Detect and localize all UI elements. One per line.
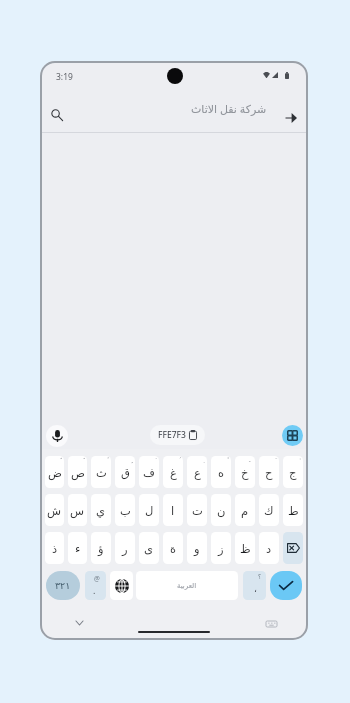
button[interactable]: ث: [91, 456, 111, 488]
button[interactable]: ظ: [235, 532, 255, 564]
staticText: ه: [218, 466, 225, 479]
staticText: ث: [96, 466, 107, 479]
staticText: ت: [192, 504, 203, 517]
staticText: ج: [289, 466, 297, 479]
button[interactable]: ا: [163, 494, 183, 526]
button[interactable]: ك: [259, 494, 279, 526]
button[interactable]: Search: [43, 101, 71, 129]
staticText: ؟: [258, 573, 262, 580]
staticText: د: [266, 542, 272, 555]
button[interactable]: Voice input: [46, 425, 68, 447]
staticText: ف: [143, 466, 155, 479]
staticText: ة: [170, 542, 177, 555]
button[interactable]: ض: [45, 456, 64, 488]
staticText: ط: [288, 504, 299, 517]
staticText: ض: [48, 466, 62, 479]
staticText: ك: [264, 504, 274, 517]
staticText: العربية: [177, 582, 197, 590]
staticText: ا: [171, 504, 175, 517]
staticText: خ: [241, 466, 249, 479]
button[interactable]: د: [259, 532, 279, 564]
button[interactable]: ق: [115, 456, 135, 488]
button[interactable]: Backspace: [283, 532, 303, 564]
button[interactable]: العربية: [136, 571, 238, 600]
button[interactable]: ة: [163, 532, 183, 564]
button[interactable]: ٣٢١: [46, 571, 80, 600]
button[interactable]: م: [235, 494, 255, 526]
button[interactable]: ح: [259, 456, 279, 488]
button[interactable]: ذ: [45, 532, 64, 564]
button[interactable]: Keyboard options: [282, 425, 303, 446]
staticText: م: [241, 504, 249, 517]
button[interactable]: Change keyboard language: [110, 571, 133, 600]
button[interactable]: ط: [283, 494, 303, 526]
staticText: ح: [265, 466, 273, 479]
staticText: ل: [145, 504, 154, 517]
staticText: ٣٢١: [55, 580, 71, 591]
staticText: ر: [122, 542, 128, 555]
staticText: ش: [47, 504, 62, 517]
staticText: FFE7F3: [158, 429, 186, 441]
staticText: 3:19: [56, 71, 73, 83]
button[interactable]: ء: [68, 532, 87, 564]
button[interactable]: ز: [211, 532, 231, 564]
staticText: و: [194, 542, 200, 555]
button[interactable]: ؟: [243, 571, 266, 600]
staticText: شركة نقل الاثاث: [191, 101, 267, 116]
button[interactable]: ي: [91, 494, 111, 526]
button[interactable]: ر: [115, 532, 135, 564]
button[interactable]: غ: [163, 456, 183, 488]
button[interactable]: و: [187, 532, 207, 564]
button[interactable]: ؤ: [91, 532, 111, 564]
staticText: ي: [96, 504, 106, 517]
staticText: ن: [217, 504, 226, 517]
staticText: س: [70, 504, 85, 517]
staticText: @: [94, 574, 100, 583]
staticText: ـ: [249, 457, 251, 463]
button[interactable]: Go: [277, 104, 305, 132]
staticText: ؤ: [98, 542, 104, 555]
staticText: ص: [71, 466, 85, 479]
staticText: ى: [144, 542, 154, 555]
staticText: ع: [194, 466, 201, 479]
button[interactable]: ج: [283, 456, 303, 488]
staticText: ب: [120, 504, 131, 517]
button[interactable]: ف: [139, 456, 159, 488]
staticText: ظ: [240, 542, 251, 555]
staticText: .: [93, 584, 96, 596]
button[interactable]: ش: [45, 494, 64, 526]
button[interactable]: ت: [187, 494, 207, 526]
button[interactable]: ى: [139, 532, 159, 564]
staticText: ز: [218, 542, 224, 555]
button[interactable]: ب: [115, 494, 135, 526]
staticText: ،: [254, 584, 257, 594]
button[interactable]: س: [68, 494, 87, 526]
staticText: ء: [75, 542, 81, 555]
button[interactable]: ص: [68, 456, 87, 488]
button[interactable]: Enter: [270, 571, 302, 600]
button[interactable]: Keyboard settings: [263, 616, 279, 632]
staticText: ذ: [52, 542, 58, 555]
button[interactable]: خ: [235, 456, 255, 488]
button[interactable]: @: [85, 571, 106, 600]
button[interactable]: ع: [187, 456, 207, 488]
staticText: ق: [121, 466, 130, 479]
button[interactable]: ل: [139, 494, 159, 526]
button[interactable]: FFE7F3: [150, 425, 205, 445]
staticText: غ: [170, 466, 177, 479]
button[interactable]: Hide keyboard: [71, 615, 87, 631]
button[interactable]: ه: [211, 456, 231, 488]
button[interactable]: ن: [211, 494, 231, 526]
